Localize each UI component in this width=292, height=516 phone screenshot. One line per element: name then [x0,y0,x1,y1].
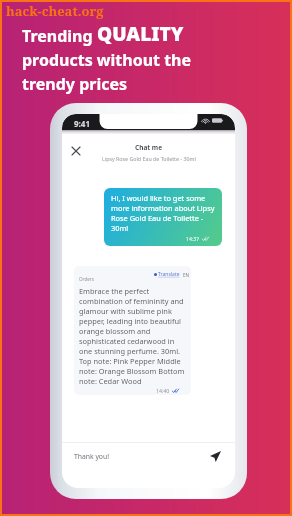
staticText: Thank you! [74,452,109,461]
staticText: 14:40 [156,387,170,394]
staticText: trendy prices [22,73,128,95]
staticText: Embrace the perfect combination of femin… [79,286,187,386]
staticText: 14:37 [186,235,200,242]
staticText: Lipsy Rose Gold Eau de Toilette - 30ml [102,155,196,162]
button[interactable]: Orders [74,266,191,395]
staticText: 9:41 [74,118,90,129]
staticText: Chat me [135,143,163,152]
button[interactable]: Send [207,448,223,464]
staticText: QUALITY [97,21,184,47]
staticText: Translate [158,271,180,278]
staticText: Trending [22,25,97,47]
staticText: EN [183,272,190,278]
staticText: Orders [79,276,94,282]
staticText: Hi, I would like to get some more inform… [111,193,215,233]
button[interactable]: Hi, I would like to get some more inform… [104,188,222,246]
staticText: products without the [22,49,192,71]
button[interactable]: Close [67,142,85,160]
staticText: hack-cheat.org [6,2,104,20]
